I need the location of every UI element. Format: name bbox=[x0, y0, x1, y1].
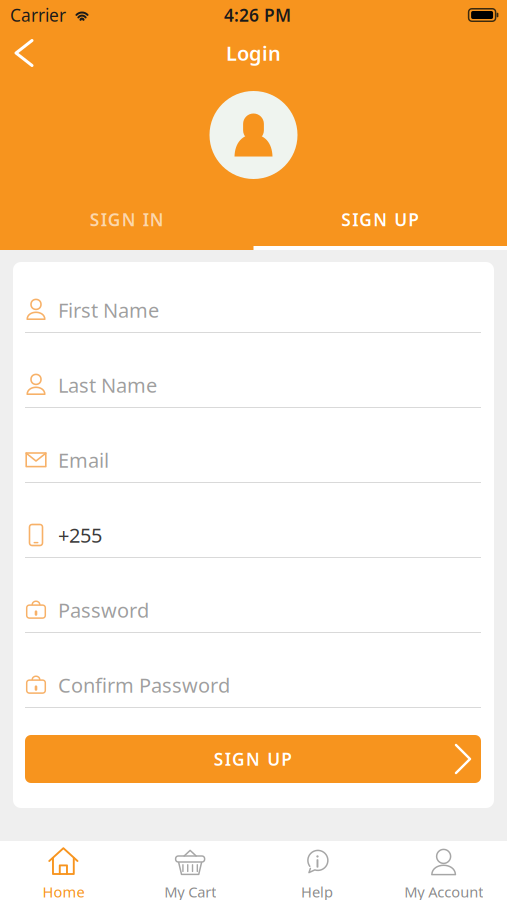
button[interactable]: Help bbox=[253, 841, 380, 900]
staticText: Carrier bbox=[10, 3, 66, 26]
staticText: SIGN UP bbox=[341, 208, 419, 231]
button[interactable]: Home bbox=[0, 841, 127, 900]
staticText: Help bbox=[301, 882, 333, 900]
staticText: Email bbox=[58, 447, 109, 473]
button[interactable]: SIGN UP bbox=[25, 735, 481, 783]
staticText: Home bbox=[42, 882, 84, 900]
staticText: SIGN UP bbox=[214, 747, 292, 770]
button[interactable]: My Cart bbox=[127, 841, 254, 900]
button[interactable]: SIGN IN bbox=[0, 196, 253, 243]
staticText: First Name bbox=[58, 297, 159, 323]
staticText: 4:26 PM bbox=[224, 3, 291, 26]
staticText: My Account bbox=[404, 882, 483, 900]
staticText: Last Name bbox=[58, 372, 157, 398]
staticText: Password bbox=[58, 597, 149, 623]
button[interactable]: SIGN UP bbox=[253, 196, 507, 243]
staticText: My Cart bbox=[164, 882, 216, 900]
staticText: SIGN IN bbox=[90, 208, 164, 231]
button[interactable]: My Account bbox=[380, 841, 507, 900]
staticText: Login bbox=[226, 40, 281, 66]
staticText: +255 bbox=[58, 522, 102, 548]
button[interactable]: Back bbox=[0, 30, 48, 76]
staticText: Confirm Password bbox=[58, 672, 230, 698]
